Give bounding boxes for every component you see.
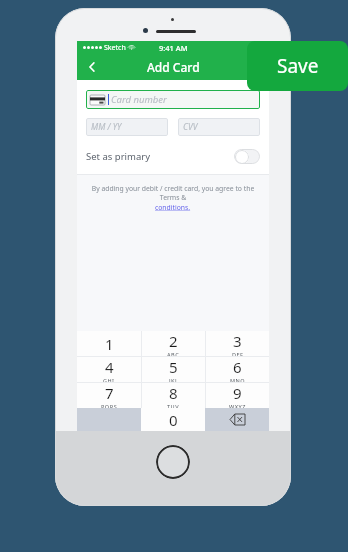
staticText: Sketch [104, 43, 126, 53]
button[interactable]: conditions. [155, 203, 191, 212]
button[interactable]: Back [77, 54, 107, 80]
button[interactable]: 7 [77, 383, 141, 408]
button[interactable]: Card number [86, 90, 260, 109]
button[interactable]: Set as primary [86, 147, 260, 165]
staticText: 9 [233, 383, 242, 403]
staticText: 9:41 AM [159, 43, 188, 53]
button[interactable]: 5 [142, 357, 205, 382]
staticText: 3 [233, 331, 242, 351]
staticText: 4 [105, 357, 114, 377]
button[interactable]: 1 [77, 331, 141, 356]
button[interactable]: 3 [206, 331, 269, 356]
staticText: By adding your debit / credit card, you … [91, 184, 255, 202]
staticText: MM / YY [91, 121, 122, 133]
button[interactable]: Save [247, 41, 348, 91]
staticText: ABC [167, 351, 180, 356]
staticText: 0 [169, 410, 178, 430]
staticText: conditions. [155, 203, 191, 212]
button[interactable]: Home [156, 445, 190, 479]
staticText: WXYZ [229, 403, 246, 408]
staticText: PQRS [101, 403, 118, 408]
staticText: 6 [233, 357, 242, 377]
staticText: 8 [169, 383, 178, 403]
button[interactable]: CVV [178, 118, 260, 136]
button[interactable]: 4 [77, 357, 141, 382]
staticText: 7 [105, 383, 114, 403]
staticText: 2 [169, 331, 178, 351]
button[interactable]: 2 [142, 331, 205, 356]
staticText: 5 [169, 357, 178, 377]
button[interactable]: MM / YY [86, 118, 168, 136]
staticText: Set as primary [86, 150, 151, 163]
staticText: Add Card [147, 59, 200, 75]
staticText: TUV [167, 403, 180, 408]
staticText: JKL [169, 377, 179, 382]
button[interactable]: 0 [141, 408, 205, 431]
button[interactable]: Backspace [205, 408, 269, 431]
staticText: MNO [230, 377, 246, 382]
staticText: Card number [111, 93, 167, 106]
button[interactable]: 9 [206, 383, 269, 408]
staticText: 1 [105, 334, 114, 354]
staticText: Save [277, 53, 319, 79]
button[interactable]: 6 [206, 357, 269, 382]
button[interactable]: 8 [142, 383, 205, 408]
staticText: DEF [232, 351, 244, 356]
staticText: GHI [103, 377, 115, 382]
staticText: CVV [183, 121, 198, 133]
